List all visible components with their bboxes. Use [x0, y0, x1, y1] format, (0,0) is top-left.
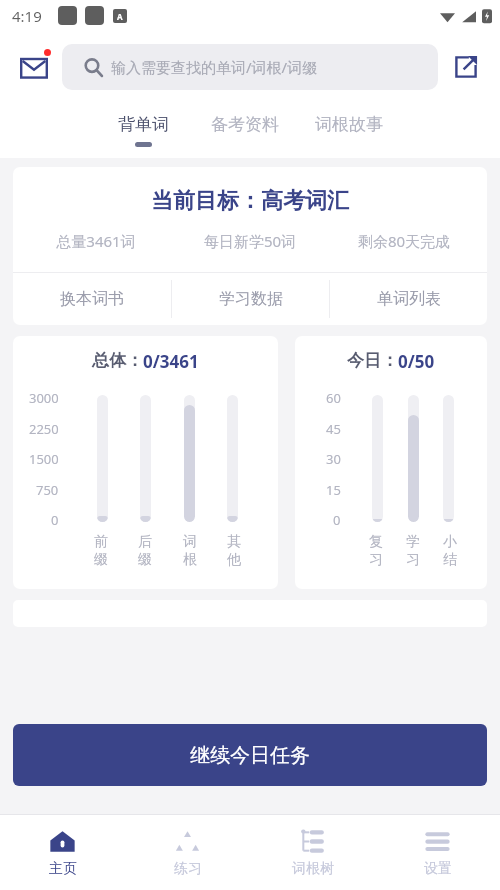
staticText: 缀	[138, 551, 152, 569]
staticText: 设置	[424, 860, 452, 878]
staticText: 单词列表	[377, 289, 441, 309]
staticText: 他	[227, 551, 241, 569]
staticText: 词根故事	[315, 114, 383, 135]
staticText: 学习数据	[219, 289, 283, 309]
staticText: 今日：	[347, 350, 398, 371]
button[interactable]: 输入需要查找的单词/词根/词缀	[62, 44, 438, 90]
button[interactable]: 总体：	[13, 336, 278, 589]
button[interactable]: 词根树	[250, 815, 375, 890]
button[interactable]: 练习	[125, 815, 250, 890]
staticText: 词根树	[292, 860, 334, 878]
staticText: 输入需要查找的单词/词根/词缀	[111, 57, 318, 77]
staticText: 根	[183, 551, 197, 569]
staticText: 每日新学50词	[173, 231, 327, 251]
staticText: 后	[138, 533, 152, 551]
staticText: 45	[326, 420, 341, 438]
staticText: 总量3461词	[19, 231, 173, 251]
staticText: 30	[326, 450, 341, 468]
staticText: 750	[36, 481, 59, 499]
staticText: 前	[94, 533, 108, 551]
staticText: 背单词	[118, 114, 169, 135]
staticText: A	[117, 11, 123, 22]
button[interactable]: 学习数据	[172, 273, 329, 325]
button[interactable]: 今日：	[295, 336, 487, 589]
button[interactable]: 备考资料	[207, 110, 283, 151]
button[interactable]: Open external	[446, 47, 486, 87]
staticText: 0/50	[398, 350, 435, 373]
button[interactable]: Messages	[14, 47, 54, 87]
button[interactable]: 继续今日任务	[13, 724, 487, 786]
staticText: 备考资料	[211, 114, 279, 135]
staticText: 3000	[29, 389, 59, 407]
staticText: 0/3461	[143, 350, 199, 373]
staticText: 主页	[49, 860, 77, 878]
staticText: 小	[443, 533, 457, 551]
button[interactable]: 单词列表	[330, 273, 487, 325]
staticText: 4:19	[12, 6, 42, 26]
staticText: 2250	[29, 420, 59, 438]
staticText: 习	[406, 551, 420, 569]
staticText: 学	[406, 533, 420, 551]
staticText: 0	[333, 511, 341, 529]
staticText: 60	[326, 389, 341, 407]
staticText: 总体：	[92, 350, 143, 371]
staticText: 继续今日任务	[190, 743, 310, 768]
staticText: 缀	[94, 551, 108, 569]
button[interactable]: 换本词书	[13, 273, 171, 325]
staticText: 当前目标：高考词汇	[13, 187, 487, 215]
staticText: 其	[227, 533, 241, 551]
button[interactable]: 主页	[0, 815, 125, 890]
button[interactable]: 背单词	[114, 110, 173, 151]
staticText: 0	[51, 511, 59, 529]
staticText: 练习	[174, 860, 202, 878]
button[interactable]: 词根故事	[311, 110, 387, 151]
staticText: 剩余80天完成	[327, 231, 481, 251]
staticText: 复	[369, 533, 383, 551]
staticText: 1500	[29, 450, 59, 468]
staticText: 换本词书	[60, 289, 124, 309]
staticText: 结	[443, 551, 457, 569]
staticText: 15	[326, 481, 341, 499]
staticText: 词	[183, 533, 197, 551]
button[interactable]: 设置	[375, 815, 500, 890]
staticText: 习	[369, 551, 383, 569]
